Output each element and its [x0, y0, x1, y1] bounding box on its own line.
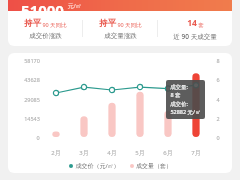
button[interactable]: 成交数据详情 — [170, 83, 201, 116]
staticText: 8 — [216, 57, 220, 64]
staticText: 51000 — [21, 0, 64, 11]
staticText: 7月 — [191, 149, 201, 157]
staticText: 2月 — [51, 149, 61, 157]
staticText: 90 天同比 — [117, 21, 142, 29]
staticText: 成交价: — [170, 100, 188, 108]
staticText: 成交量（套） — [136, 162, 172, 170]
staticText: 29085 — [24, 96, 40, 103]
staticText: 52882 元/㎡ — [170, 108, 201, 116]
staticText: 0 — [216, 134, 220, 141]
staticText: 持平 — [24, 18, 41, 29]
staticText: 4月 — [107, 149, 117, 157]
staticText: 元/㎡ — [67, 2, 82, 10]
staticText: 14543 — [24, 115, 40, 122]
staticText: 8 套 — [170, 91, 181, 99]
button[interactable]: 成交价（元/㎡） — [69, 162, 120, 170]
staticText: 4 — [216, 96, 220, 103]
button[interactable]: 持平 — [8, 11, 82, 46]
staticText: 0 — [36, 134, 40, 141]
staticText: 6 — [216, 76, 220, 83]
staticText: 58170 — [24, 57, 40, 64]
staticText: 成交量: — [170, 83, 188, 91]
button[interactable]: 持平 — [83, 11, 157, 46]
staticText: 43628 — [24, 76, 40, 83]
staticText: 2 — [216, 115, 220, 122]
staticText: 成交价（元/㎡） — [75, 162, 120, 170]
staticText: 成交价涨跌 — [29, 32, 62, 40]
button[interactable]: 成交量（套） — [130, 162, 172, 170]
staticText: 3月 — [79, 149, 89, 157]
staticText: 6月 — [163, 149, 173, 157]
staticText: 14 — [187, 17, 197, 29]
staticText: 90 天同比 — [42, 21, 67, 29]
staticText: 成交量涨跌 — [104, 32, 137, 40]
staticText: 持平 — [99, 18, 116, 29]
staticText: 5月 — [135, 149, 145, 157]
staticText: 套 — [198, 22, 204, 29]
staticText: 近 90 天成交量 — [173, 32, 217, 41]
button[interactable]: 14 — [158, 11, 232, 46]
